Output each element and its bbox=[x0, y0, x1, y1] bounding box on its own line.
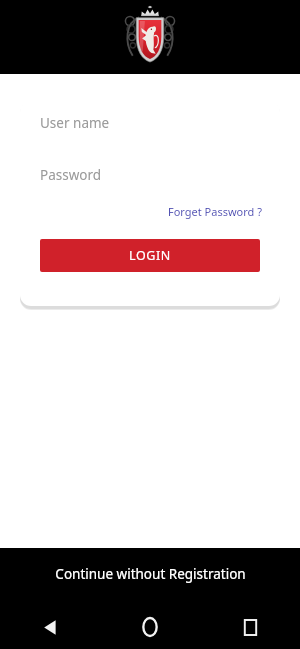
staticText: LOGIN bbox=[129, 247, 171, 264]
button[interactable]: Forget Password ? bbox=[168, 202, 280, 221]
staticText: Forget Password ? bbox=[168, 204, 262, 219]
staticText: Password bbox=[40, 166, 102, 184]
button[interactable]: Recent apps bbox=[200, 605, 300, 649]
button[interactable]: LOGIN bbox=[40, 239, 260, 272]
staticText: Continue without Registration bbox=[55, 565, 246, 583]
button[interactable]: Back bbox=[0, 605, 100, 649]
button[interactable]: Continue without Registration bbox=[41, 561, 260, 587]
staticText: User name bbox=[40, 114, 110, 132]
button[interactable]: Home bbox=[100, 605, 200, 649]
button[interactable]: User name bbox=[20, 101, 280, 145]
button[interactable]: Password bbox=[20, 158, 280, 192]
